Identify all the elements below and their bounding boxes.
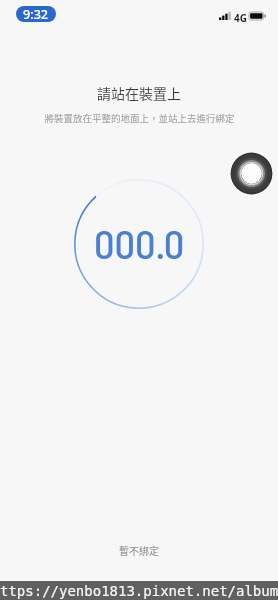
staticText: 暫不綁定 bbox=[119, 543, 159, 557]
button[interactable]: 暫不綁定 bbox=[97, 537, 181, 563]
staticText: 4G bbox=[234, 11, 247, 25]
staticText: 將裝置放在平整的地面上，並站上去進行綁定 bbox=[44, 111, 235, 125]
staticText: ttps://yenbo1813.pixnet.net/album bbox=[0, 583, 278, 599]
other: Scale device bbox=[230, 152, 273, 195]
staticText: 9:32 bbox=[23, 6, 49, 22]
staticText: 000.0 bbox=[94, 218, 185, 267]
staticText: 請站在裝置上 bbox=[97, 83, 181, 103]
